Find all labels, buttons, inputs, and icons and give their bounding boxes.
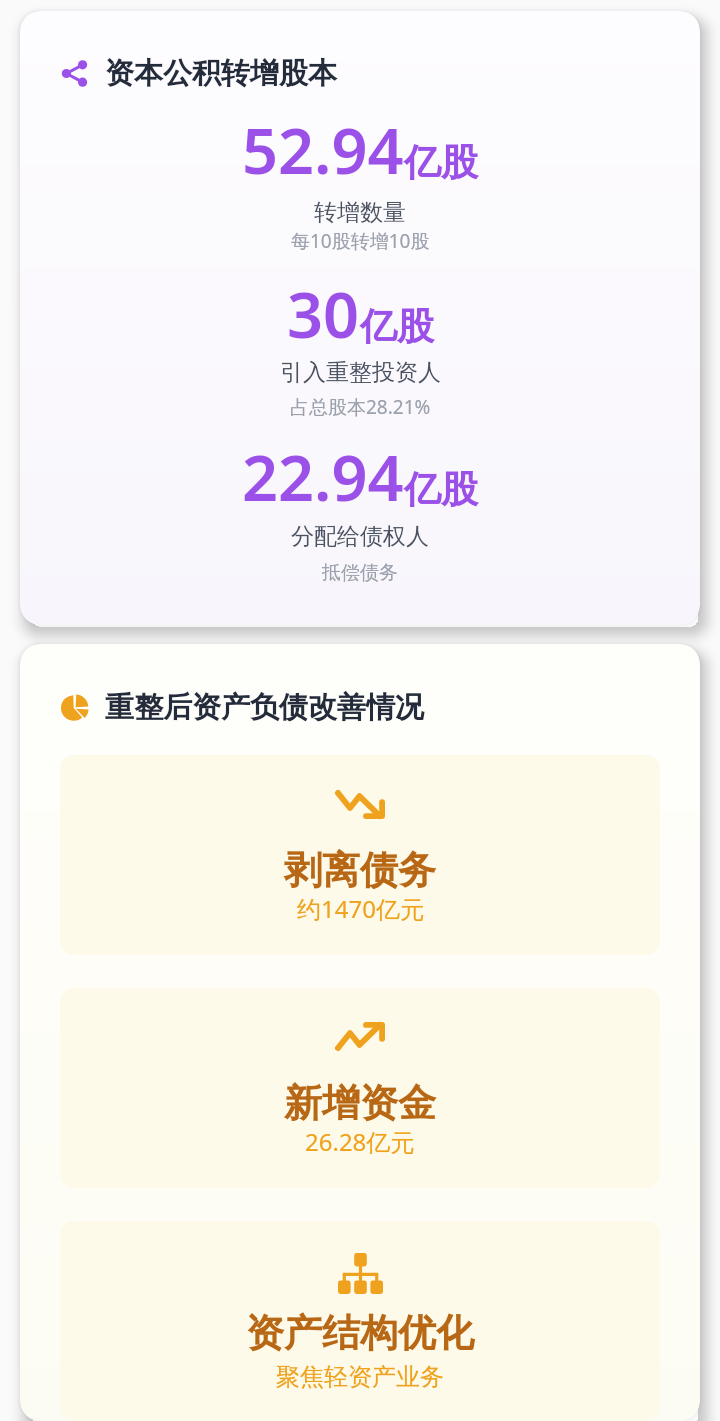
staticText: 剥离债务 [284, 846, 436, 894]
staticText: 分配给债权人 [291, 522, 429, 551]
staticText: 引入重整投资人 [280, 358, 441, 387]
other: Chart [61, 694, 88, 721]
button[interactable]: New funding [60, 988, 660, 1188]
staticText: 抵偿债务 [322, 561, 398, 585]
staticText: 约1470亿元 [297, 892, 424, 925]
button[interactable]: Chart [20, 644, 700, 1421]
staticText: 亿股 [404, 466, 478, 513]
staticText: 新增资金 [284, 1079, 436, 1127]
staticText: 30 [287, 271, 360, 357]
staticText: 亿股 [404, 139, 478, 186]
staticText: 亿股 [360, 303, 434, 350]
staticText: 转增数量 [314, 198, 406, 227]
staticText: 重整后资产负债改善情况 [105, 689, 424, 726]
staticText: 资本公积转增股本 [105, 55, 337, 92]
button[interactable]: Debt reduction [60, 755, 660, 955]
other: New funding [60, 1022, 660, 1051]
staticText: 占总股本28.21% [290, 394, 431, 420]
staticText: 22.94 [242, 434, 404, 520]
staticText: 26.28亿元 [305, 1125, 415, 1158]
staticText: 聚焦轻资产业务 [276, 1362, 444, 1392]
staticText: 资产结构优化 [246, 1309, 474, 1357]
other: Asset structure [60, 1253, 660, 1294]
staticText: 每10股转增10股 [291, 228, 430, 254]
button[interactable]: Asset structure [60, 1221, 660, 1421]
other: Share [61, 60, 88, 87]
other: Debt reduction [60, 790, 660, 819]
staticText: 52.94 [242, 107, 404, 193]
button[interactable]: Share [20, 11, 700, 625]
